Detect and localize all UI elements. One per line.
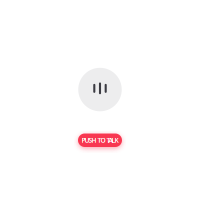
staticText: PUSH TO TALK <box>81 136 118 145</box>
button[interactable]: PUSH TO TALK <box>78 133 122 147</box>
button[interactable]: Audio level <box>78 68 122 111</box>
